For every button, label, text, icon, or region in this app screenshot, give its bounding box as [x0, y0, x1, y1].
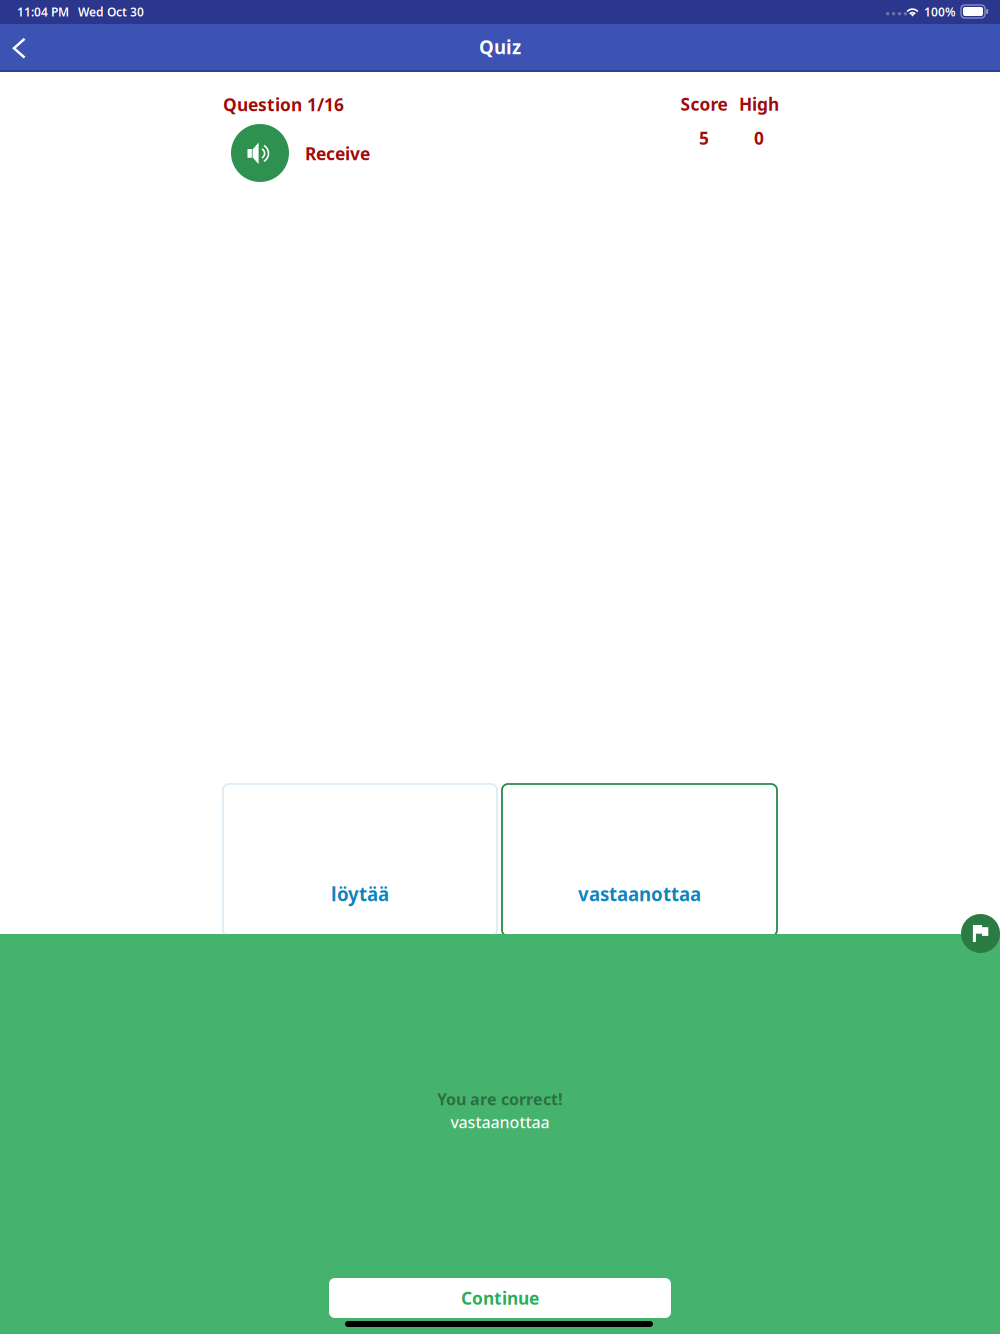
staticText: löytää [331, 882, 389, 906]
staticText: 100% [924, 4, 956, 20]
button[interactable]: Back [0, 26, 37, 70]
staticText: Question 1/16 [223, 93, 344, 116]
button[interactable]: Play pronunciation [231, 124, 289, 182]
button[interactable]: Report a problem [961, 914, 1000, 953]
button[interactable]: Continue [329, 1278, 671, 1318]
staticText: High [739, 92, 779, 115]
button[interactable]: vastaanottaa [502, 784, 777, 936]
staticText: 11:04 PM [17, 4, 69, 20]
staticText: 5 [699, 126, 709, 149]
staticText: Wed Oct 30 [78, 4, 144, 20]
staticText: Receive [305, 142, 370, 165]
staticText: Score [680, 92, 727, 115]
staticText: Continue [461, 1286, 539, 1309]
staticText: 0 [754, 126, 764, 149]
staticText: Quiz [479, 35, 521, 59]
staticText: You are correct! [437, 1088, 563, 1110]
button[interactable]: löytää [223, 784, 497, 936]
staticText: vastaanottaa [578, 882, 701, 906]
staticText: vastaanottaa [450, 1111, 549, 1133]
